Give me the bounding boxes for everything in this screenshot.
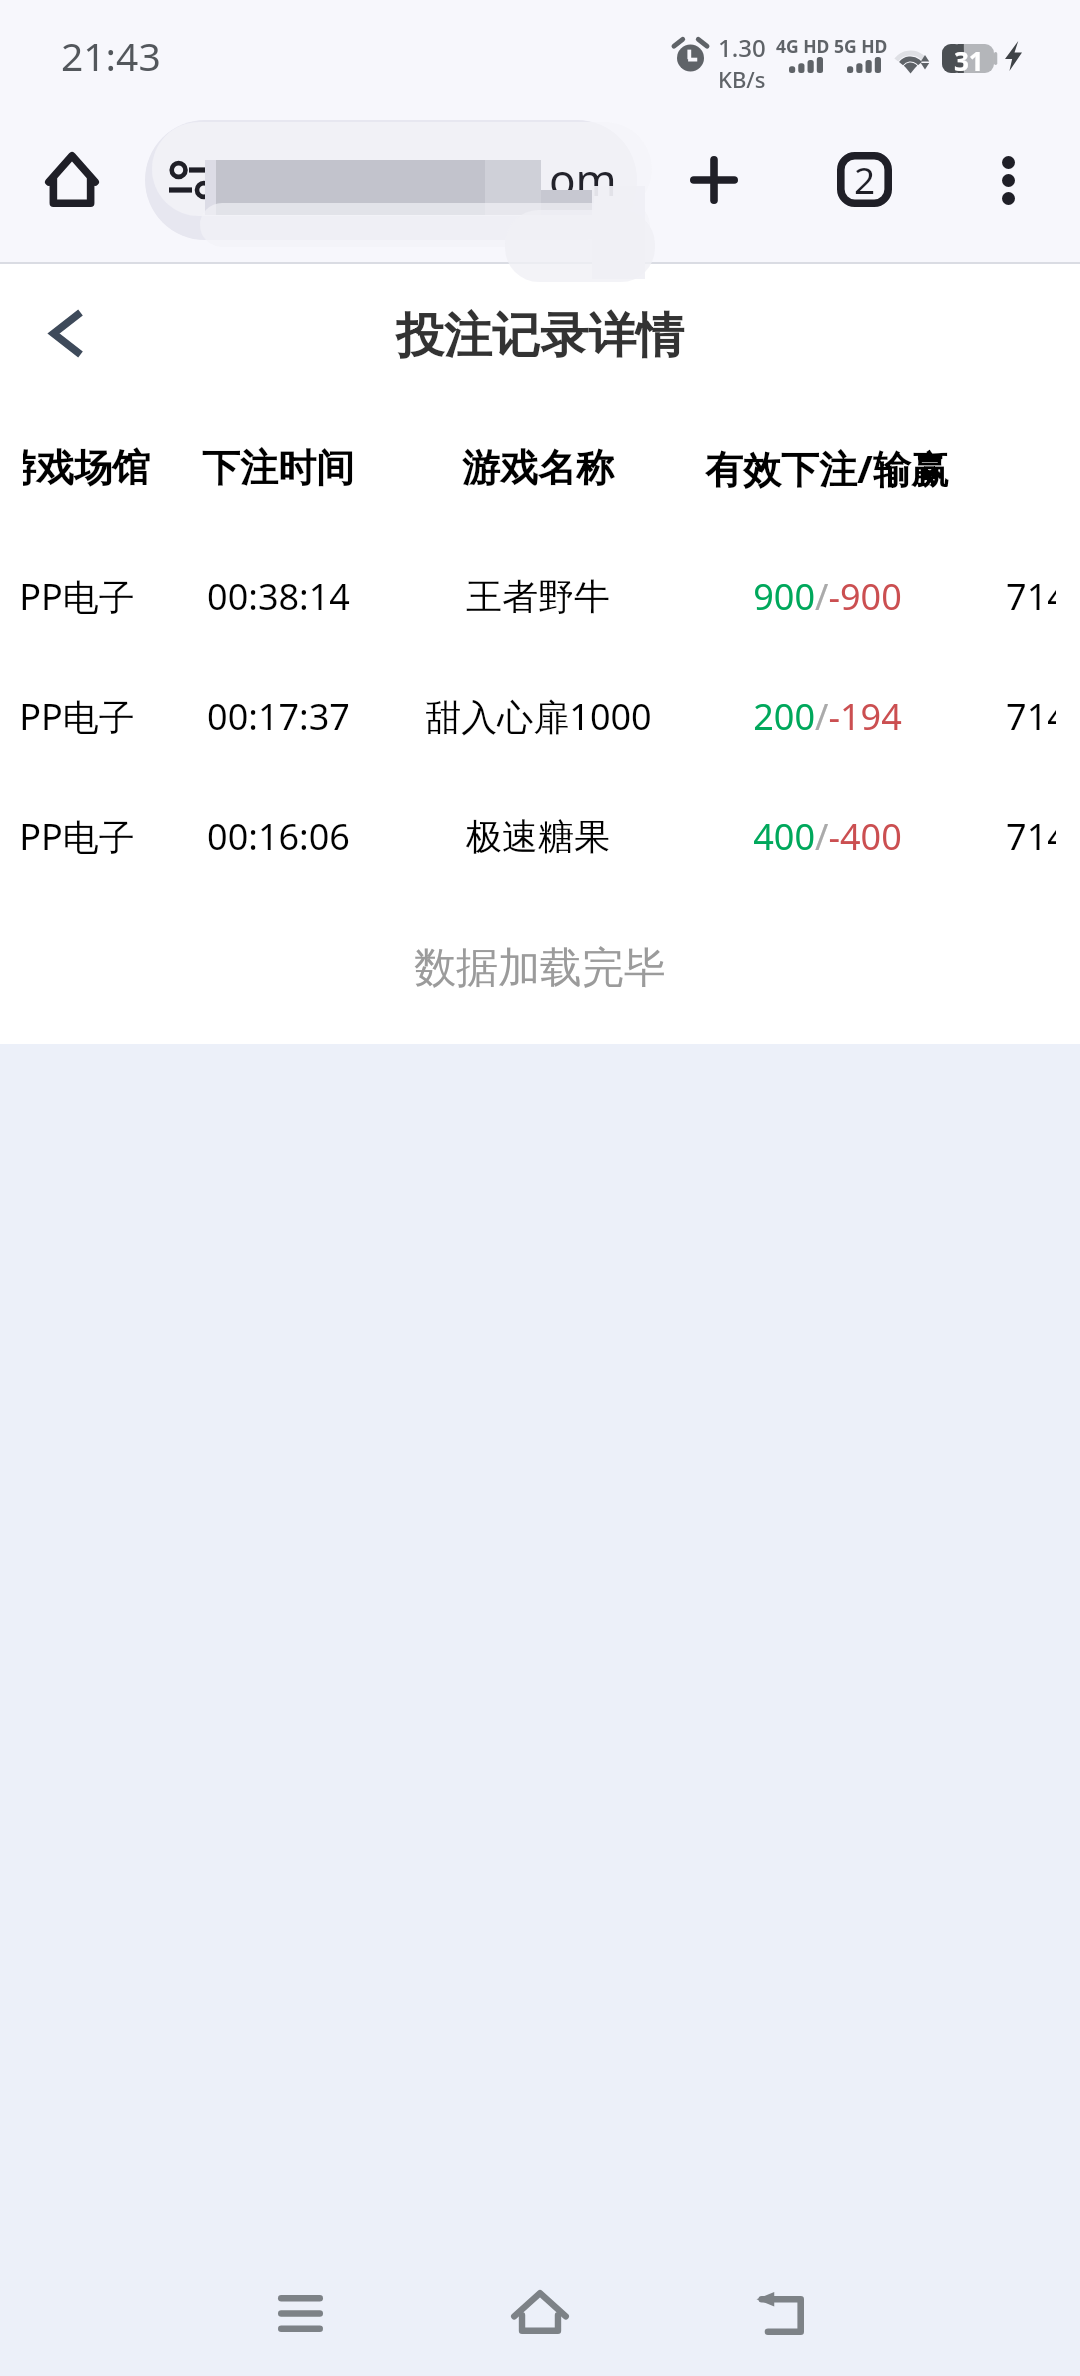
button[interactable]: Back bbox=[27, 293, 107, 373]
staticText: 游戏名称 bbox=[462, 444, 614, 492]
button[interactable]: New tab bbox=[674, 140, 754, 220]
staticText: 714 bbox=[1006, 812, 1068, 861]
button[interactable]: Recent apps bbox=[240, 2253, 360, 2373]
staticText: 极速糖果 bbox=[466, 814, 610, 859]
staticText: 714 bbox=[1006, 692, 1068, 741]
staticText: PP电子 bbox=[19, 692, 135, 741]
staticText: 游戏场馆 bbox=[0, 444, 150, 492]
staticText: 投注记录详情 bbox=[396, 306, 684, 366]
staticText: 王者野牛 bbox=[466, 574, 610, 619]
staticText: PP电子 bbox=[19, 812, 135, 861]
staticText: 714 bbox=[1006, 572, 1068, 621]
staticText: 00:17:37 bbox=[207, 692, 350, 741]
staticText: 4G HD bbox=[776, 34, 830, 58]
staticText: 甜入心扉1000 bbox=[425, 692, 652, 741]
button[interactable]: More options bbox=[968, 140, 1048, 220]
button[interactable]: Home bbox=[480, 2252, 600, 2372]
staticText: PP电子 bbox=[19, 572, 135, 621]
staticText: 00:16:06 bbox=[207, 812, 350, 861]
staticText: 00:38:14 bbox=[207, 572, 350, 621]
staticText: 200/-194 bbox=[753, 692, 902, 741]
staticText: 5G HD bbox=[834, 34, 888, 58]
button[interactable]: Home bbox=[32, 139, 112, 219]
button[interactable]: Back bbox=[720, 2253, 840, 2373]
button[interactable]: Tabs bbox=[824, 139, 904, 219]
staticText: 21:43 bbox=[61, 29, 161, 82]
staticText: 900/-900 bbox=[753, 572, 902, 621]
staticText: 1.30 bbox=[718, 31, 766, 64]
staticText: 400/-400 bbox=[753, 812, 902, 861]
staticText: 有效下注/输赢 bbox=[705, 442, 949, 494]
button[interactable]: Address bar bbox=[145, 120, 637, 240]
staticText: 31 bbox=[954, 43, 984, 72]
staticText: 2 bbox=[854, 154, 876, 204]
staticText: KB/s bbox=[718, 64, 766, 94]
staticText: om bbox=[549, 149, 617, 209]
staticText: 数据加载完毕 bbox=[414, 942, 666, 995]
staticText: 下注时间 bbox=[202, 444, 354, 492]
